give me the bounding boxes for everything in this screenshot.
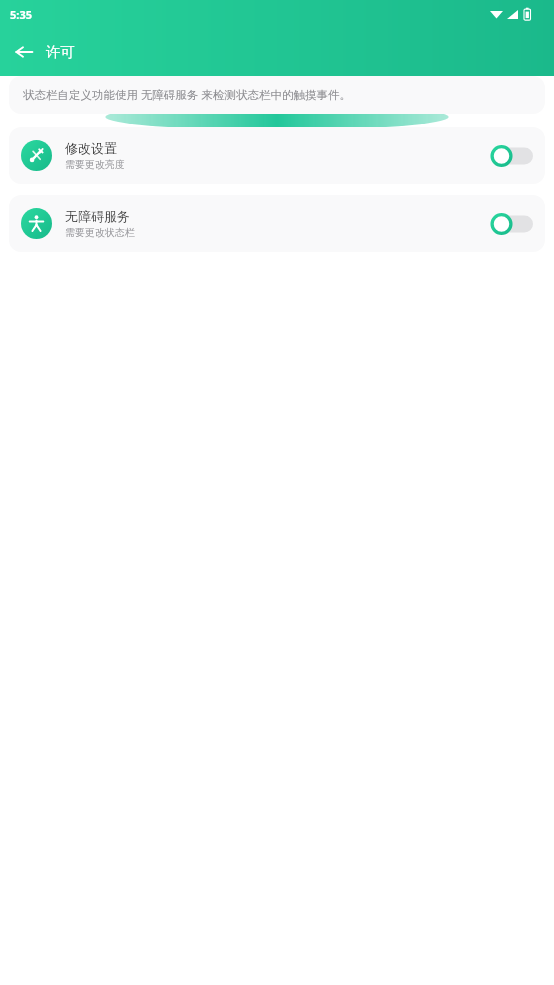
button[interactable]: 无障碍服务 xyxy=(9,195,545,252)
button[interactable]: 修改设置 xyxy=(9,127,545,184)
staticText: 5:35 xyxy=(10,7,32,22)
button[interactable]: Toggle permission xyxy=(491,143,533,169)
button[interactable]: Toggle permission xyxy=(491,211,533,237)
staticText: 需要更改亮度 xyxy=(65,158,125,171)
button[interactable]: Back xyxy=(4,32,44,72)
staticText: 状态栏自定义功能使用 无障碍服务 来检测状态栏中的触摸事件。 xyxy=(23,87,351,103)
staticText: 需要更改状态栏 xyxy=(65,226,135,239)
staticText: 许可 xyxy=(46,43,75,61)
staticText: 无障碍服务 xyxy=(65,208,130,224)
staticText: 修改设置 xyxy=(65,140,117,156)
